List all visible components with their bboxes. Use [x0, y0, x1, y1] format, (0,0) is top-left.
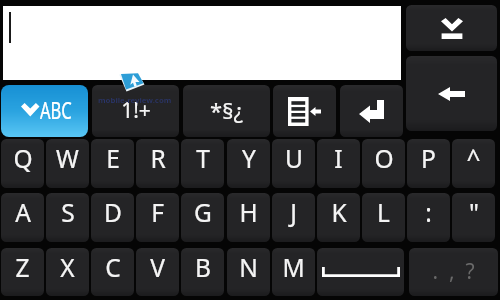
button[interactable]: M: [272, 248, 315, 296]
button[interactable]: L: [362, 193, 405, 242]
staticText: R: [150, 142, 166, 175]
button[interactable]: C: [91, 248, 134, 296]
button[interactable]: Enter: [340, 85, 403, 137]
staticText: H: [239, 196, 258, 229]
staticText: G: [194, 196, 212, 229]
staticText: K: [331, 196, 347, 229]
staticText: ABC: [40, 94, 72, 125]
button[interactable]: Z: [1, 248, 44, 296]
staticText: Z: [15, 251, 30, 284]
staticText: P: [421, 142, 436, 175]
button[interactable]: ": [452, 193, 495, 242]
button[interactable]: E: [91, 139, 134, 188]
button[interactable]: S: [46, 193, 89, 242]
button[interactable]: G: [181, 193, 224, 242]
button[interactable]: :: [407, 193, 450, 242]
button[interactable]: T: [181, 139, 224, 188]
staticText: . , ?: [432, 257, 475, 286]
button[interactable]: Backspace: [406, 56, 497, 131]
button[interactable]: V: [136, 248, 179, 296]
staticText: ^: [466, 142, 481, 175]
staticText: ": [469, 196, 479, 229]
staticText: V: [150, 251, 165, 284]
button[interactable]: N: [227, 248, 270, 296]
staticText: X: [60, 251, 75, 284]
staticText: S: [61, 196, 75, 229]
button[interactable]: P: [407, 139, 450, 188]
staticText: mobile-review.com: [98, 95, 172, 106]
staticText: F: [151, 196, 164, 229]
staticText: C: [105, 251, 121, 284]
button[interactable]: W: [46, 139, 89, 188]
staticText: 1!+: [121, 96, 151, 125]
staticText: D: [104, 196, 122, 229]
button[interactable]: A: [1, 193, 44, 242]
button[interactable]: B: [181, 248, 224, 296]
staticText: *§¿: [210, 95, 243, 125]
staticText: N: [239, 251, 258, 284]
button[interactable]: I: [317, 139, 360, 188]
staticText: J: [290, 196, 297, 229]
staticText: B: [195, 251, 211, 284]
staticText: E: [106, 142, 120, 175]
staticText: W: [56, 142, 79, 175]
button[interactable]: R: [136, 139, 179, 188]
button[interactable]: D: [91, 193, 134, 242]
staticText: T: [196, 142, 210, 175]
button[interactable]: *§¿: [183, 85, 270, 137]
button[interactable]: O: [362, 139, 405, 188]
button[interactable]: H: [227, 193, 270, 242]
button[interactable]: J: [272, 193, 315, 242]
staticText: Q: [13, 142, 33, 175]
staticText: :: [425, 196, 432, 229]
button[interactable]: Q: [1, 139, 44, 188]
button[interactable]: Y: [227, 139, 270, 188]
staticText: O: [374, 142, 394, 175]
button[interactable]: U: [272, 139, 315, 188]
button[interactable]: F: [136, 193, 179, 242]
button[interactable]: 1!+: [92, 85, 179, 137]
button[interactable]: . , ?: [409, 248, 498, 296]
staticText: A: [15, 196, 31, 229]
button[interactable]: Space: [317, 248, 404, 296]
button[interactable]: Input mode: [273, 85, 336, 137]
staticText: U: [285, 142, 303, 175]
button[interactable]: Hide keyboard: [406, 5, 497, 51]
button[interactable]: [3, 6, 401, 80]
staticText: Y: [242, 142, 256, 175]
button[interactable]: ABC mode: [1, 85, 88, 137]
button[interactable]: X: [46, 248, 89, 296]
button[interactable]: K: [317, 193, 360, 242]
button[interactable]: ^: [452, 139, 495, 188]
staticText: M: [282, 251, 305, 284]
staticText: I: [334, 142, 343, 175]
staticText: L: [377, 196, 390, 229]
